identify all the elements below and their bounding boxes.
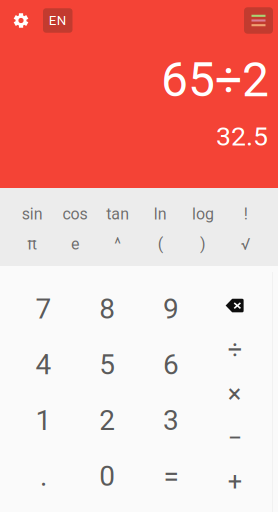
button[interactable]: 1 bbox=[11, 392, 75, 448]
button[interactable]: cos bbox=[54, 199, 96, 229]
staticText: ln bbox=[154, 205, 167, 223]
button[interactable]: × bbox=[203, 372, 267, 416]
button[interactable]: . bbox=[11, 448, 75, 504]
staticText: ) bbox=[200, 235, 206, 253]
staticText: + bbox=[228, 467, 242, 497]
staticText: ! bbox=[244, 205, 248, 223]
staticText: 2 bbox=[99, 404, 115, 437]
staticText: tan bbox=[106, 205, 129, 223]
button[interactable]: π bbox=[11, 229, 54, 259]
button[interactable]: ! bbox=[224, 199, 267, 229]
button[interactable]: e bbox=[54, 229, 96, 259]
staticText: . bbox=[40, 460, 47, 492]
staticText: e bbox=[71, 235, 79, 253]
staticText: ( bbox=[158, 235, 163, 253]
button[interactable]: ln bbox=[139, 199, 182, 229]
button[interactable]: ( bbox=[139, 229, 182, 259]
staticText: = bbox=[163, 460, 178, 492]
button[interactable]: 7 bbox=[11, 281, 75, 337]
staticText: cos bbox=[62, 205, 87, 223]
staticText: 3 bbox=[163, 404, 179, 437]
button[interactable]: − bbox=[203, 416, 267, 460]
button[interactable]: = bbox=[139, 448, 203, 504]
button[interactable]: sin bbox=[11, 199, 54, 229]
button[interactable]: Menu bbox=[244, 7, 273, 34]
staticText: √ bbox=[241, 235, 251, 253]
button[interactable]: EN bbox=[43, 8, 72, 33]
button[interactable]: 4 bbox=[11, 337, 75, 393]
staticText: 9 bbox=[163, 292, 179, 325]
staticText: × bbox=[228, 379, 242, 409]
staticText: − bbox=[228, 423, 242, 453]
button[interactable]: 9 bbox=[139, 281, 203, 337]
staticText: sin bbox=[22, 205, 43, 223]
staticText: EN bbox=[49, 13, 67, 28]
button[interactable]: 3 bbox=[139, 392, 203, 448]
staticText: 7 bbox=[35, 292, 51, 325]
staticText: log bbox=[192, 205, 214, 223]
button[interactable]: ) bbox=[182, 229, 224, 259]
staticText: π bbox=[27, 235, 37, 253]
staticText: 4 bbox=[35, 348, 51, 381]
staticText: 0 bbox=[99, 460, 115, 492]
button[interactable]: Backspace bbox=[203, 283, 267, 328]
staticText: 32.5 bbox=[216, 121, 268, 152]
staticText: 5 bbox=[99, 348, 115, 381]
button[interactable]: tan bbox=[96, 199, 139, 229]
staticText: 6 bbox=[163, 348, 179, 381]
button[interactable]: ÷ bbox=[203, 328, 267, 372]
button[interactable]: 0 bbox=[75, 448, 139, 504]
button[interactable]: ^ bbox=[96, 229, 139, 259]
button[interactable]: 8 bbox=[75, 281, 139, 337]
button[interactable]: 6 bbox=[139, 337, 203, 393]
staticText: 1 bbox=[35, 404, 51, 437]
staticText: ^ bbox=[114, 235, 121, 253]
button[interactable]: Settings bbox=[7, 6, 35, 34]
button[interactable]: 5 bbox=[75, 337, 139, 393]
button[interactable]: + bbox=[203, 460, 267, 504]
button[interactable]: log bbox=[182, 199, 224, 229]
staticText: ÷ bbox=[228, 335, 242, 364]
button[interactable]: 2 bbox=[75, 392, 139, 448]
staticText: 8 bbox=[99, 292, 115, 325]
button[interactable]: √ bbox=[224, 229, 267, 259]
staticText: 65÷2 bbox=[161, 52, 269, 108]
